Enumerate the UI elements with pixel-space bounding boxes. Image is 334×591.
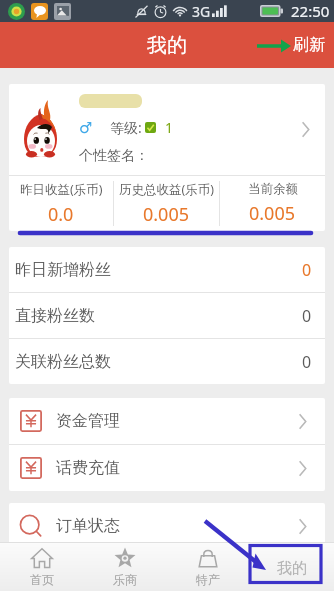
button[interactable]: 昨日新增粉丝 — [9, 247, 325, 292]
staticText: 我的 — [147, 33, 187, 58]
staticText: 0 — [302, 351, 312, 373]
button[interactable]: 首页 — [0, 542, 83, 591]
staticText: 1 — [165, 118, 174, 137]
staticText: 0.0 — [48, 202, 74, 227]
button[interactable]: 历史总收益(乐币) — [114, 176, 219, 231]
button[interactable]: 订单状态 — [9, 503, 325, 549]
button[interactable]: 乐商 — [83, 542, 166, 591]
staticText: 乐商 — [113, 572, 137, 587]
staticText: 刷新 — [293, 35, 325, 55]
button[interactable]: 收货地址 — [9, 550, 325, 591]
staticText: 首页 — [30, 572, 54, 587]
button[interactable]: 关联粉丝总数 — [9, 339, 325, 384]
staticText: 收货地址 — [56, 561, 120, 581]
staticText: 等级: — [110, 118, 142, 137]
staticText: 0.005 — [249, 201, 296, 226]
button[interactable]: 我的 — [250, 542, 334, 591]
staticText: 特产 — [196, 572, 220, 587]
staticText: 话费充值 — [56, 458, 120, 478]
staticText: 3G — [192, 2, 211, 21]
staticText: 当前余额 — [248, 181, 298, 197]
button[interactable]: 资金管理 — [9, 398, 325, 444]
button[interactable]: 直接粉丝数 — [9, 293, 325, 338]
staticText: 我的 — [277, 559, 307, 578]
staticText: 0 — [302, 259, 312, 281]
staticText: 22:50 — [291, 1, 330, 21]
button[interactable]: ♂ — [9, 84, 325, 175]
staticText: 昨日收益(乐币) — [20, 181, 103, 198]
button[interactable]: 昨日收益(乐币) — [9, 176, 113, 231]
staticText: 直接粉丝数 — [15, 306, 95, 326]
button[interactable]: 话费充值 — [9, 445, 325, 491]
staticText: 关联粉丝总数 — [15, 352, 111, 372]
staticText: 0.005 — [143, 202, 190, 227]
staticText: 资金管理 — [56, 411, 120, 431]
button[interactable]: 刷新 — [285, 22, 334, 68]
button[interactable]: 当前余额 — [220, 176, 325, 231]
staticText: 昨日新增粉丝 — [15, 260, 111, 280]
staticText: 历史总收益(乐币) — [119, 181, 215, 198]
staticText: 订单状态 — [56, 516, 120, 536]
staticText: 0 — [302, 305, 312, 327]
button[interactable]: 特产 — [166, 542, 250, 591]
staticText: 个性签名： — [79, 147, 149, 165]
staticText: ♂ — [79, 119, 93, 136]
